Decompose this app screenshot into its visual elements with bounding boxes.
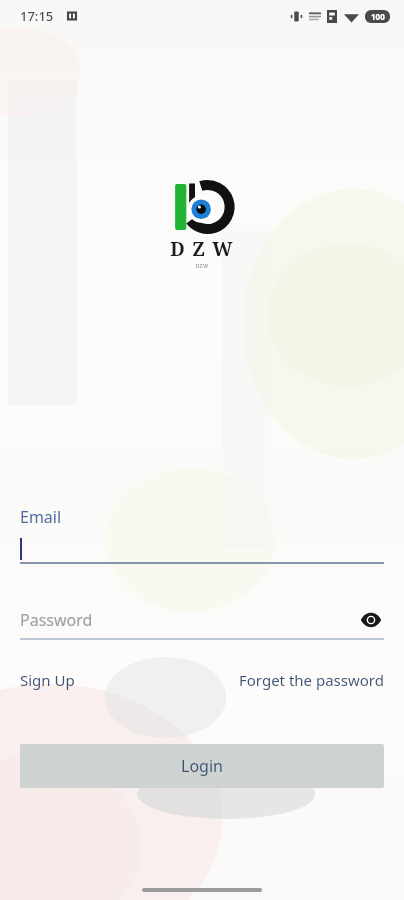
button[interactable]: Password (20, 608, 384, 632)
staticText: DZW (195, 263, 209, 270)
staticText: Forget the password (239, 670, 384, 690)
button[interactable] (20, 536, 384, 562)
staticText: Sign Up (20, 670, 75, 690)
button[interactable]: Show password (358, 608, 384, 632)
button[interactable]: Login (20, 744, 384, 788)
staticText: Login (181, 755, 223, 777)
button[interactable]: Sign Up (20, 670, 75, 690)
staticText: D Z W (170, 236, 234, 262)
button[interactable]: Forget the password (239, 670, 384, 690)
staticText: 17:15 (20, 7, 54, 25)
staticText: 100 (371, 11, 385, 22)
staticText: Email (20, 506, 62, 528)
staticText: Password (20, 609, 358, 631)
